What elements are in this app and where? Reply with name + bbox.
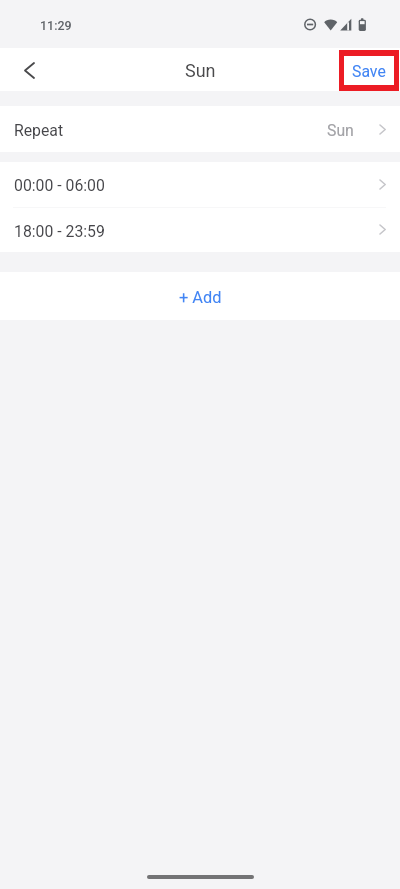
button[interactable]: Repeat: [0, 106, 400, 152]
button[interactable]: 18:00 - 23:59: [0, 207, 400, 252]
staticText: + Add: [179, 288, 222, 307]
staticText: Sun: [327, 121, 354, 140]
button[interactable]: Back: [0, 48, 43, 91]
staticText: Sun: [185, 60, 216, 81]
staticText: Save: [352, 62, 386, 81]
staticText: 00:00 - 06:00: [14, 176, 105, 195]
button[interactable]: 00:00 - 06:00: [0, 162, 400, 207]
button[interactable]: Save: [339, 50, 399, 91]
staticText: 18:00 - 23:59: [14, 222, 105, 241]
staticText: Repeat: [14, 121, 64, 140]
staticText: 11:29: [40, 18, 72, 33]
button[interactable]: + Add: [0, 272, 400, 320]
